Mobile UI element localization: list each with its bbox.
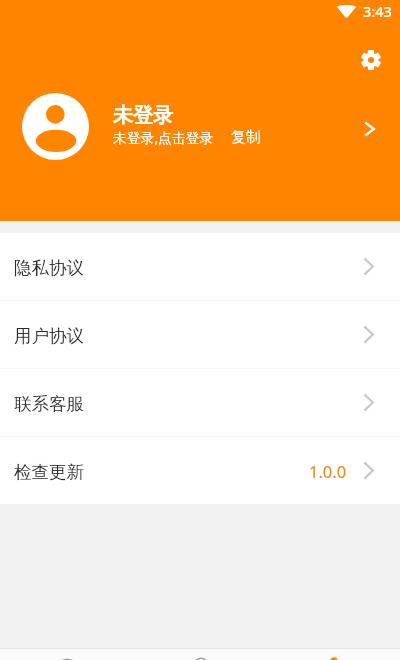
button[interactable]: 未登录 <box>0 93 400 160</box>
button[interactable]: Discover <box>134 649 267 660</box>
button[interactable]: 隐私协议 <box>0 233 400 300</box>
staticText: 检查更新 <box>14 461 84 483</box>
staticText: 1.0.0 <box>309 460 347 482</box>
button[interactable]: 联系客服 <box>0 369 400 436</box>
staticText: 3:43 <box>363 1 392 21</box>
button[interactable]: 用户协议 <box>0 301 400 368</box>
staticText: 未登录,点击登录 <box>113 128 214 147</box>
staticText: 用户协议 <box>14 325 84 347</box>
staticText: 未登录 <box>113 103 173 128</box>
button[interactable]: Home <box>0 649 134 660</box>
button[interactable]: 复制 <box>231 128 261 147</box>
staticText: 联系客服 <box>14 393 84 415</box>
button[interactable]: 检查更新 <box>0 437 400 504</box>
button[interactable]: Settings <box>354 43 388 77</box>
staticText: 隐私协议 <box>14 257 84 279</box>
button[interactable]: Mine <box>267 649 400 660</box>
